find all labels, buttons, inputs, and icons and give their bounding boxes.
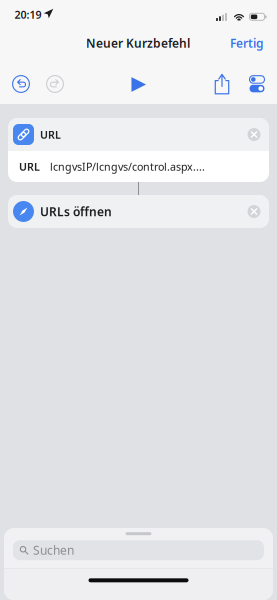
staticText: URLs öffnen — [40, 203, 112, 219]
button[interactable]: Remove action — [243, 123, 265, 145]
button[interactable]: URLs öffnen — [8, 195, 269, 228]
button[interactable]: Redo — [38, 67, 72, 101]
button[interactable]: Run shortcut — [120, 67, 156, 101]
staticText: Neuer Kurzbefehl — [86, 35, 190, 51]
staticText: lcngvsIP/lcngvs/control.aspx.... — [50, 159, 205, 174]
button[interactable]: Shortcut details — [242, 67, 272, 101]
button[interactable]: Undo — [4, 67, 38, 101]
button[interactable]: Share — [206, 67, 238, 101]
button[interactable]: Fertig — [224, 31, 270, 55]
staticText: Suchen — [33, 542, 74, 558]
button[interactable]: URL — [8, 118, 269, 182]
staticText: URL — [19, 159, 40, 174]
staticText: URL — [40, 127, 61, 142]
staticText: Fertig — [230, 35, 264, 51]
staticText: 20:19 — [14, 7, 41, 22]
button[interactable]: Remove action — [243, 200, 265, 222]
button[interactable]: Suchen — [4, 535, 273, 560]
